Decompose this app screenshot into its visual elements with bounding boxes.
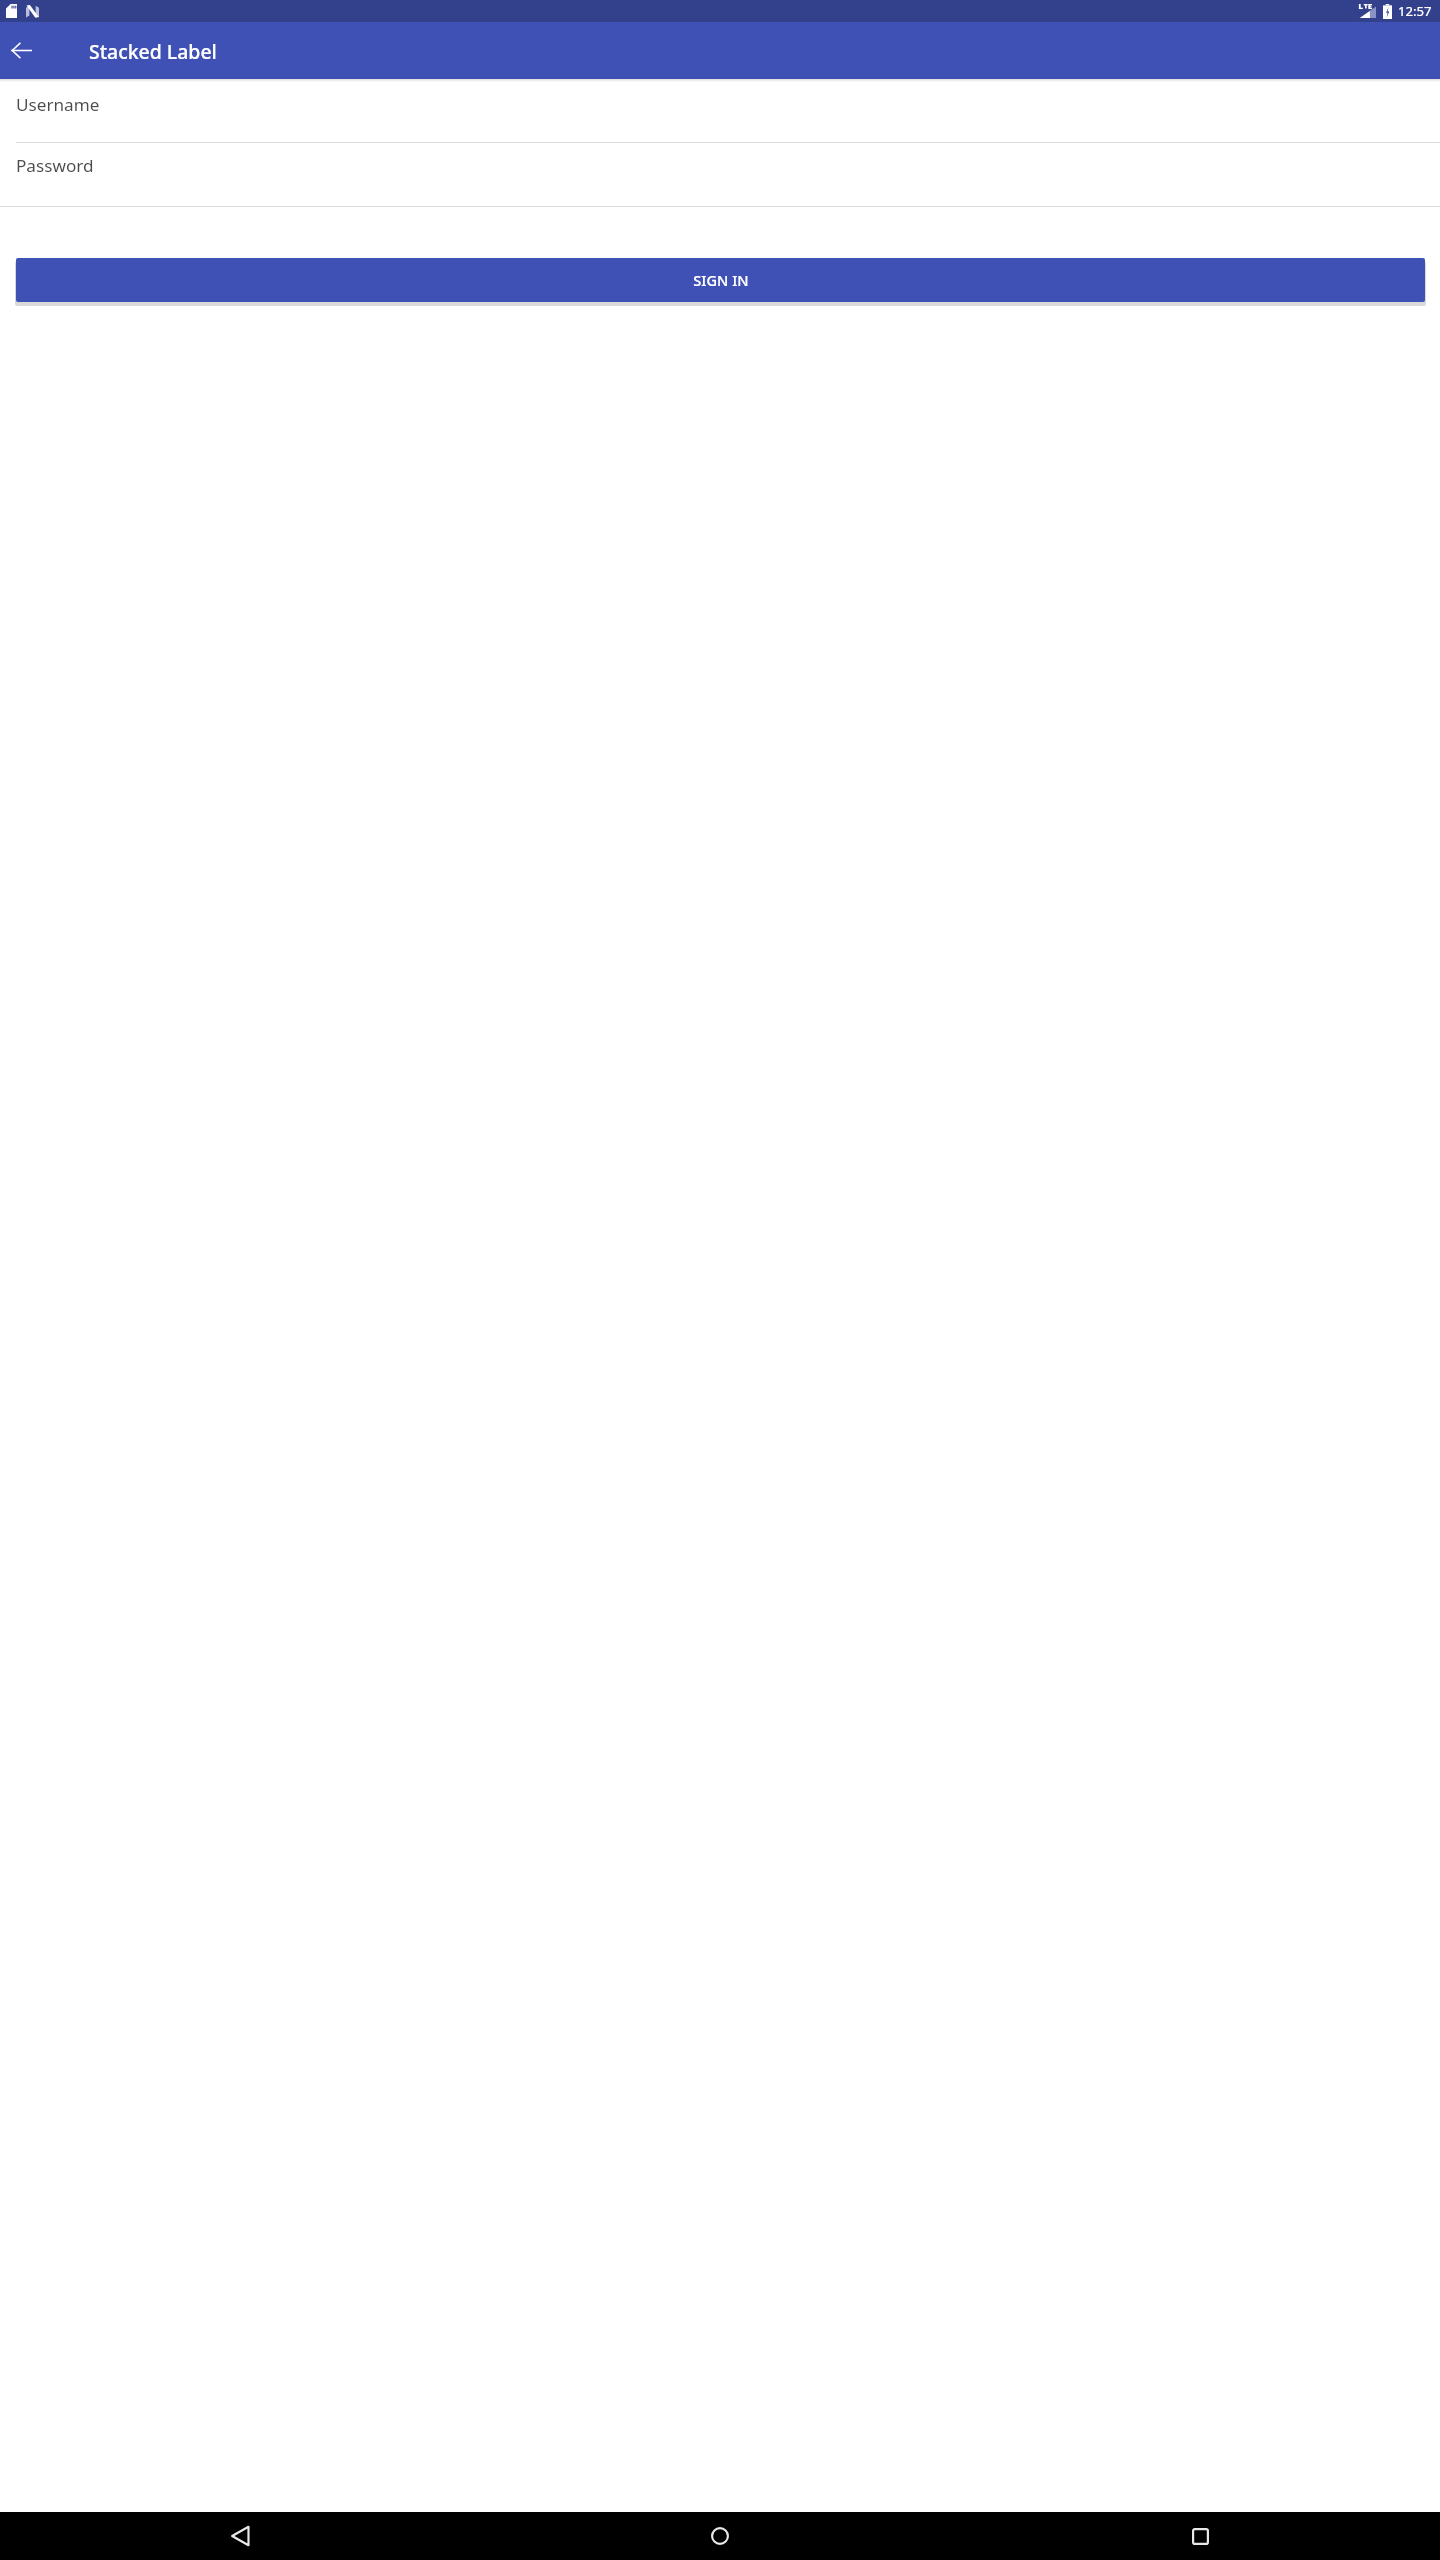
staticText: Stacked Label [89, 38, 217, 64]
button[interactable]: Password [0, 143, 1440, 207]
staticText: 12:57 [1398, 2, 1432, 20]
button[interactable]: Back [0, 2512, 480, 2560]
staticText: SIGN IN [693, 270, 749, 290]
button[interactable]: SIGN IN [16, 258, 1425, 302]
button[interactable]: Recent apps [960, 2512, 1440, 2560]
button[interactable]: Username [0, 82, 1440, 143]
button[interactable]: Navigate up [6, 35, 37, 66]
button[interactable]: Home [480, 2512, 960, 2560]
staticText: Username [16, 93, 100, 116]
staticText: Password [16, 154, 94, 177]
